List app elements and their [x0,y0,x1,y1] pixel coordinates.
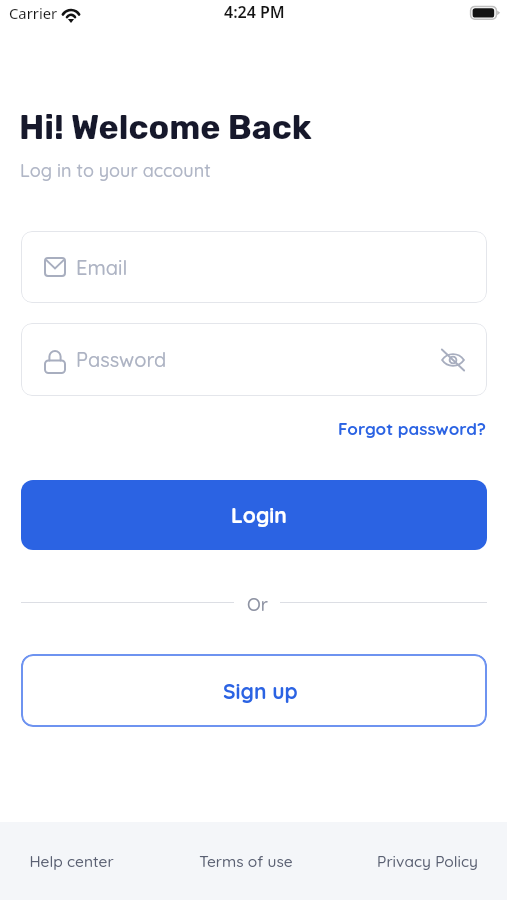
button[interactable]: Help center [29,851,114,870]
staticText: Hi! Welcome Back [19,107,312,147]
button[interactable]: Show password [437,344,469,376]
button[interactable]: Terms of use [199,851,293,870]
staticText: Terms of use [199,851,293,870]
button[interactable]: Sign up [21,654,487,727]
button[interactable]: Email [21,231,487,303]
staticText: Login [231,502,287,528]
staticText: Password [76,347,167,372]
button[interactable]: Login [21,480,487,550]
staticText: Carrier [9,3,58,23]
staticText: Log in to your account [20,159,211,182]
staticText: Privacy Policy [377,851,478,870]
staticText: Email [76,255,128,280]
button[interactable]: Forgot password? [338,418,486,439]
staticText: Sign up [223,678,298,704]
button[interactable]: Privacy Policy [377,851,478,870]
staticText: Or [247,593,268,616]
staticText: Help center [29,851,114,870]
staticText: 4:24 PM [224,1,285,23]
button[interactable]: Password [21,323,487,396]
